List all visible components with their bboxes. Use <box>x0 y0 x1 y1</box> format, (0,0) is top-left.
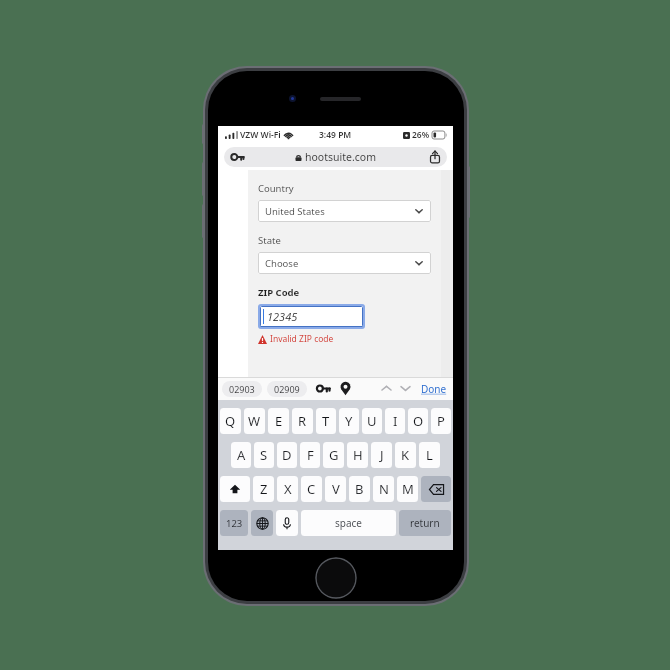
button[interactable]: H <box>347 442 368 468</box>
button[interactable]: M <box>397 476 418 502</box>
button[interactable]: Share <box>428 150 442 164</box>
button[interactable]: V <box>325 476 346 502</box>
staticText: 12345 <box>267 309 298 324</box>
staticText: U <box>367 412 377 430</box>
button[interactable]: A <box>231 442 251 468</box>
staticText: G <box>329 446 339 464</box>
staticText: Invalid ZIP code <box>270 333 334 345</box>
staticText: K <box>401 446 410 464</box>
button[interactable]: 02903 <box>222 381 262 397</box>
staticText: C <box>307 480 316 498</box>
staticText: United States <box>265 205 325 218</box>
staticText: V <box>332 480 340 498</box>
staticText: 3:49 PM <box>319 129 352 141</box>
button[interactable]: Choose <box>258 252 431 274</box>
button[interactable]: Home <box>315 557 357 599</box>
button[interactable]: C <box>301 476 322 502</box>
button[interactable]: U <box>362 408 382 434</box>
staticText: State <box>258 234 281 247</box>
button[interactable]: return <box>399 510 451 536</box>
staticText: P <box>437 412 445 430</box>
staticText: 123 <box>226 517 243 530</box>
staticText: B <box>355 480 364 498</box>
button[interactable]: E <box>268 408 289 434</box>
button[interactable]: R <box>292 408 313 434</box>
button[interactable]: B <box>349 476 370 502</box>
staticText: S <box>260 446 268 464</box>
staticText: Q <box>225 412 236 430</box>
staticText: ZIP Code <box>258 286 300 299</box>
button[interactable]: Passwords <box>316 381 331 396</box>
staticText: F <box>307 446 314 464</box>
button[interactable]: S <box>254 442 274 468</box>
button[interactable]: X <box>277 476 298 502</box>
button[interactable]: G <box>323 442 344 468</box>
button[interactable]: W <box>244 408 265 434</box>
button[interactable]: United States <box>258 200 431 222</box>
staticText: hootsuite.com <box>305 150 376 164</box>
button[interactable]: J <box>371 442 392 468</box>
button[interactable]: P <box>431 408 451 434</box>
staticText: 26% <box>412 129 430 141</box>
staticText: M <box>402 480 414 498</box>
button[interactable]: O <box>408 408 428 434</box>
button[interactable]: T <box>316 408 336 434</box>
staticText: Country <box>258 182 294 195</box>
button[interactable]: Y <box>339 408 359 434</box>
button[interactable]: Passwords <box>230 149 246 165</box>
staticText: I <box>393 412 398 430</box>
button[interactable]: 123 <box>220 510 248 536</box>
staticText: return <box>410 516 440 530</box>
button[interactable]: Z <box>253 476 274 502</box>
button[interactable]: 02909 <box>267 381 307 397</box>
staticText: W <box>248 412 261 430</box>
button[interactable]: Dictation <box>276 510 298 536</box>
button[interactable]: L <box>419 442 440 468</box>
button[interactable]: N <box>373 476 394 502</box>
staticText: O <box>413 412 424 430</box>
button[interactable]: 12345 <box>260 306 363 327</box>
staticText: J <box>380 446 384 464</box>
button[interactable]: K <box>395 442 416 468</box>
staticText: 02909 <box>274 383 300 395</box>
button[interactable]: Previous field <box>379 381 394 396</box>
button[interactable]: Done <box>419 382 449 396</box>
staticText: A <box>237 446 246 464</box>
staticText: Choose <box>265 257 299 270</box>
staticText: T <box>322 412 330 430</box>
button[interactable]: F <box>300 442 320 468</box>
staticText: VZW Wi-Fi <box>240 129 281 141</box>
button[interactable]: D <box>277 442 297 468</box>
button[interactable]: Q <box>220 408 241 434</box>
staticText: Y <box>345 412 353 430</box>
button[interactable]: Next field <box>398 381 413 396</box>
staticText: N <box>379 480 389 498</box>
button[interactable]: I <box>385 408 405 434</box>
staticText: Z <box>260 480 268 498</box>
staticText: E <box>275 412 283 430</box>
staticText: H <box>353 446 363 464</box>
button[interactable]: Shift <box>220 476 250 502</box>
staticText: D <box>282 446 292 464</box>
button[interactable]: Backspace <box>421 476 451 502</box>
button[interactable]: Location <box>338 381 353 396</box>
button[interactable]: space <box>301 510 396 536</box>
staticText: Done <box>421 382 447 396</box>
staticText: 02903 <box>229 383 255 395</box>
staticText: R <box>298 412 307 430</box>
staticText: X <box>284 480 292 498</box>
button[interactable]: Change keyboard <box>251 510 273 536</box>
staticText: L <box>426 446 433 464</box>
button[interactable]: Passwords <box>224 147 447 167</box>
staticText: space <box>335 516 362 530</box>
